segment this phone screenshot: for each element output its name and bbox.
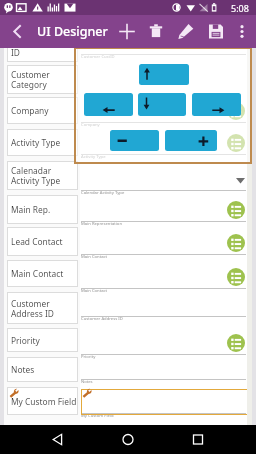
button[interactable]: Pick from list <box>227 334 245 352</box>
button[interactable]: Navigate up <box>4 15 31 48</box>
staticText: Company <box>11 105 49 116</box>
staticText: Main Contact <box>81 288 108 294</box>
button[interactable]: Back <box>38 425 78 454</box>
button[interactable]: Customer Category <box>7 65 78 94</box>
staticText: ID <box>11 47 20 58</box>
staticText: Customer Category <box>11 69 50 90</box>
button[interactable]: Pick from list <box>227 134 245 152</box>
button[interactable]: Calenadar Activity Type <box>7 161 78 190</box>
button[interactable]: Move left <box>84 93 133 116</box>
staticText: My Custom Field <box>81 413 114 419</box>
staticText: Priority <box>81 354 96 360</box>
button[interactable] <box>81 164 246 190</box>
button[interactable] <box>81 195 246 221</box>
staticText: Customer CustID <box>81 54 115 60</box>
staticText: Notes <box>81 379 93 385</box>
button[interactable]: Pick from list <box>227 201 245 219</box>
button[interactable]: Delete <box>143 15 169 48</box>
button[interactable]: Pick from list <box>227 102 245 120</box>
staticText: Main Contact <box>11 268 64 279</box>
button[interactable]: Move up <box>139 64 189 85</box>
button[interactable] <box>81 96 246 122</box>
staticText: Priority <box>11 335 40 346</box>
button[interactable] <box>81 290 246 316</box>
staticText: Main Contact <box>81 254 108 260</box>
button[interactable]: Recent apps <box>178 425 218 454</box>
button[interactable]: Edit <box>173 15 199 48</box>
staticText: Customer Address ID <box>11 298 54 319</box>
button[interactable]: Priority <box>7 328 78 352</box>
button[interactable]: Customer Address ID <box>7 292 78 324</box>
button[interactable] <box>81 387 246 413</box>
staticText: Main Representation <box>81 221 122 227</box>
button[interactable] <box>81 262 246 288</box>
button[interactable]: Decrease <box>110 130 159 151</box>
button[interactable]: Main Rep. <box>7 195 78 224</box>
button[interactable]: Home <box>108 425 148 454</box>
button[interactable] <box>81 128 246 154</box>
button[interactable]: Activity Type <box>7 129 78 156</box>
button[interactable]: Notes <box>7 357 78 382</box>
button[interactable]: Pick from list <box>227 234 245 252</box>
staticText: UI Designer <box>37 23 108 40</box>
button[interactable]: Move down <box>138 93 186 116</box>
button[interactable]: Main Contact <box>7 260 78 287</box>
button[interactable]: Company <box>7 97 78 124</box>
button[interactable]: Move right <box>192 93 241 116</box>
staticText: Company <box>81 122 100 128</box>
button[interactable] <box>81 228 246 254</box>
staticText: My Custom Field <box>11 396 77 407</box>
staticText: Notes <box>11 364 35 375</box>
button[interactable] <box>81 353 246 379</box>
staticText: Activity Type <box>81 154 106 160</box>
staticText: Main Rep. <box>11 204 51 215</box>
button[interactable]: Add <box>114 15 140 48</box>
staticText: Lead Contact <box>11 236 63 247</box>
button[interactable]: My Custom Field <box>7 387 78 415</box>
button[interactable]: Increase <box>165 130 217 151</box>
button[interactable]: Pick from list <box>227 268 245 286</box>
staticText: Activity Type <box>11 137 61 148</box>
staticText: Calendar Activity Type <box>81 190 125 196</box>
staticText: 5:08 <box>231 2 249 14</box>
button[interactable]: Save <box>203 15 229 48</box>
staticText: Customer Address ID <box>81 316 123 322</box>
button[interactable] <box>81 389 248 415</box>
staticText: Calenadar Activity Type <box>11 165 61 186</box>
button[interactable]: Lead Contact <box>7 227 78 256</box>
button[interactable] <box>81 28 246 54</box>
button[interactable]: More options <box>229 15 255 48</box>
button[interactable] <box>81 328 246 354</box>
button[interactable]: ID <box>7 42 78 62</box>
